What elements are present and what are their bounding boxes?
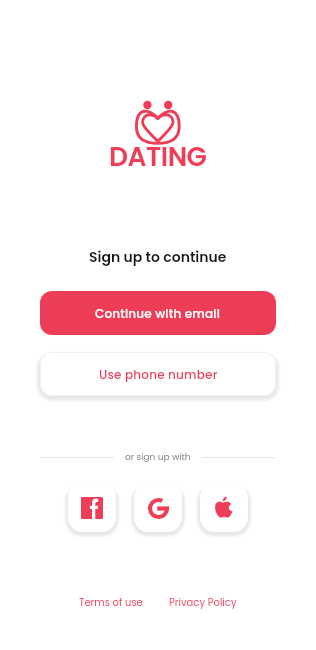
staticText: Use phone number — [99, 366, 218, 383]
button[interactable]: Sign up with Apple — [200, 484, 248, 532]
button[interactable]: Use phone number — [40, 352, 276, 396]
staticText: Terms of use — [79, 595, 143, 609]
button[interactable]: Terms of use — [79, 595, 143, 609]
button[interactable]: Privacy Policy — [169, 595, 237, 609]
staticText: or sign up with — [125, 451, 191, 464]
button[interactable]: Sign up with Facebook — [68, 484, 116, 532]
button[interactable]: Continue with email — [40, 291, 276, 335]
staticText: Continue with email — [95, 305, 221, 322]
staticText: DATING — [109, 138, 207, 175]
staticText: Privacy Policy — [169, 595, 237, 609]
staticText: Sign up to continue — [89, 247, 227, 267]
button[interactable]: Sign up with Google — [134, 484, 182, 532]
